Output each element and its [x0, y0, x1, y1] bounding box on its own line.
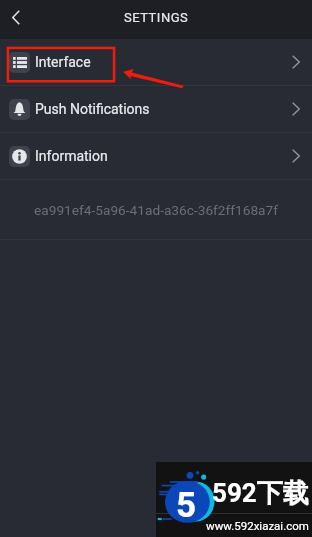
staticText: 592下载	[212, 477, 309, 510]
staticText: Push Notifications	[35, 101, 150, 117]
button[interactable]: Interface	[0, 39, 312, 85]
staticText: SETTINGS	[124, 10, 189, 25]
button[interactable]: Back	[0, 0, 31, 34]
staticText: ea991ef4-5a96-41ad-a36c-36f2ff168a7f	[34, 202, 279, 218]
button[interactable]: Information	[0, 133, 312, 179]
staticText: www.592xiazai.com	[206, 519, 309, 532]
staticText: 5	[176, 485, 197, 526]
staticText: Interface	[35, 54, 91, 70]
button[interactable]: Push Notifications	[0, 86, 312, 132]
staticText: Information	[35, 148, 108, 164]
